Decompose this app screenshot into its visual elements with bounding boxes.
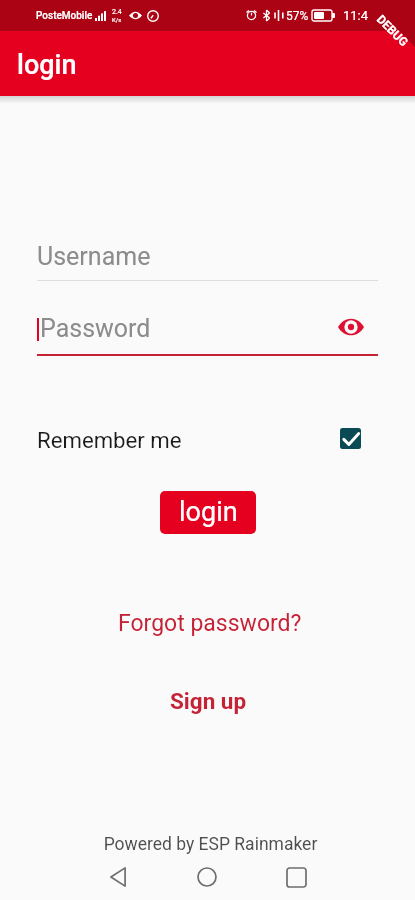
- button[interactable]: Forgot password?: [106, 604, 314, 643]
- staticText: Sign up: [170, 688, 247, 714]
- staticText: Remember me: [37, 427, 182, 453]
- button[interactable]: Recents: [274, 855, 318, 899]
- staticText: DEBUG: [374, 12, 411, 50]
- staticText: PosteMobile: [36, 10, 93, 22]
- staticText: 2.4: [112, 8, 122, 16]
- staticText: Forgot password?: [118, 610, 302, 637]
- button[interactable]: Home: [185, 855, 229, 899]
- button[interactable]: Remember me: [331, 419, 370, 458]
- staticText: Username: [37, 242, 151, 271]
- staticText: K/s: [112, 16, 122, 23]
- button[interactable]: Sign up: [158, 682, 259, 720]
- button[interactable]: Show password: [334, 310, 368, 344]
- staticText: login: [17, 49, 77, 81]
- staticText: Powered by ESP Rainmaker: [3, 834, 415, 855]
- button[interactable]: Back: [96, 855, 140, 899]
- staticText: 11:4: [343, 8, 369, 23]
- button[interactable]: login: [160, 491, 256, 534]
- staticText: Password: [40, 314, 151, 343]
- staticText: 57%: [286, 9, 309, 23]
- staticText: login: [179, 496, 238, 528]
